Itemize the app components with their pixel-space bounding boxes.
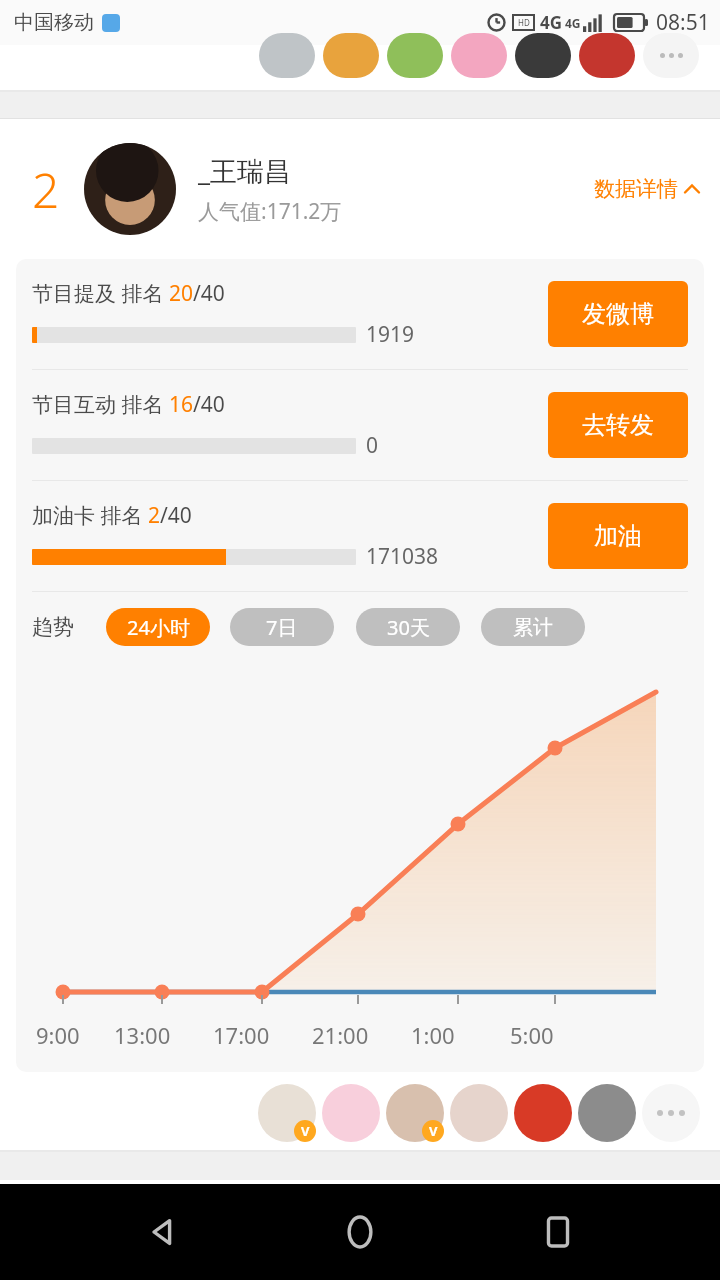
- button[interactable]: 加油: [548, 503, 688, 569]
- staticText: 4G: [540, 11, 563, 34]
- button[interactable]: 数据详情: [590, 172, 704, 206]
- staticText: 2: [32, 157, 60, 222]
- button[interactable]: Fan avatar: [515, 33, 571, 78]
- button[interactable]: Home: [325, 1197, 395, 1267]
- button[interactable]: Fan avatar: [259, 33, 315, 78]
- staticText: 趋势: [32, 614, 74, 640]
- button[interactable]: Fan avatar: [451, 33, 507, 78]
- staticText: 24小时: [127, 614, 190, 641]
- staticText: 累计: [513, 615, 553, 640]
- staticText: _王瑞昌: [198, 152, 291, 189]
- button[interactable]: User avatar: [84, 143, 176, 235]
- staticText: V: [429, 1122, 438, 1140]
- staticText: 1919: [366, 320, 415, 349]
- button[interactable]: 去转发: [548, 392, 688, 458]
- staticText: 加油: [594, 521, 642, 551]
- staticText: 13:00: [114, 1020, 171, 1050]
- staticText: 节目互动 排名 16/40: [32, 390, 225, 419]
- button[interactable]: 发微博: [548, 281, 688, 347]
- button[interactable]: 累计: [481, 608, 585, 646]
- staticText: 发微博: [582, 299, 654, 329]
- staticText: 加油卡 排名 2/40: [32, 501, 192, 530]
- staticText: 21:00: [312, 1020, 369, 1050]
- staticText: V: [301, 1122, 310, 1140]
- staticText: 171038: [366, 542, 439, 571]
- staticText: 节目提及 排名 20/40: [32, 279, 225, 308]
- button[interactable]: 30天: [356, 608, 460, 646]
- button[interactable]: Fan avatar: [323, 33, 379, 78]
- staticText: 4G: [565, 15, 581, 31]
- button[interactable]: More supporters: [642, 1084, 700, 1142]
- button[interactable]: Supporter avatar: [450, 1084, 508, 1142]
- button[interactable]: Supporter avatar: [578, 1084, 636, 1142]
- button[interactable]: More fans: [643, 33, 699, 78]
- staticText: 中国移动: [14, 10, 94, 35]
- staticText: 0: [366, 431, 379, 460]
- button[interactable]: Recents: [523, 1197, 593, 1267]
- button[interactable]: Fan avatar: [387, 33, 443, 78]
- staticText: 30天: [387, 614, 430, 641]
- button[interactable]: Supporter avatar: [514, 1084, 572, 1142]
- staticText: 人气值:171.2万: [198, 197, 342, 226]
- staticText: 5:00: [510, 1020, 554, 1050]
- button[interactable]: 24小时: [106, 608, 210, 646]
- staticText: HD: [518, 17, 530, 28]
- staticText: 9:00: [36, 1020, 80, 1050]
- staticText: 7日: [266, 614, 298, 641]
- staticText: 17:00: [213, 1020, 270, 1050]
- button[interactable]: Supporter avatar: [258, 1084, 316, 1142]
- button[interactable]: Back: [128, 1197, 198, 1267]
- button[interactable]: Fan avatar: [579, 33, 635, 78]
- staticText: 去转发: [582, 410, 654, 440]
- button[interactable]: Supporter avatar: [386, 1084, 444, 1142]
- staticText: 1:00: [411, 1020, 455, 1050]
- button[interactable]: 7日: [230, 608, 334, 646]
- button[interactable]: Supporter avatar: [322, 1084, 380, 1142]
- staticText: 08:51: [656, 8, 710, 37]
- staticText: 数据详情: [594, 176, 678, 202]
